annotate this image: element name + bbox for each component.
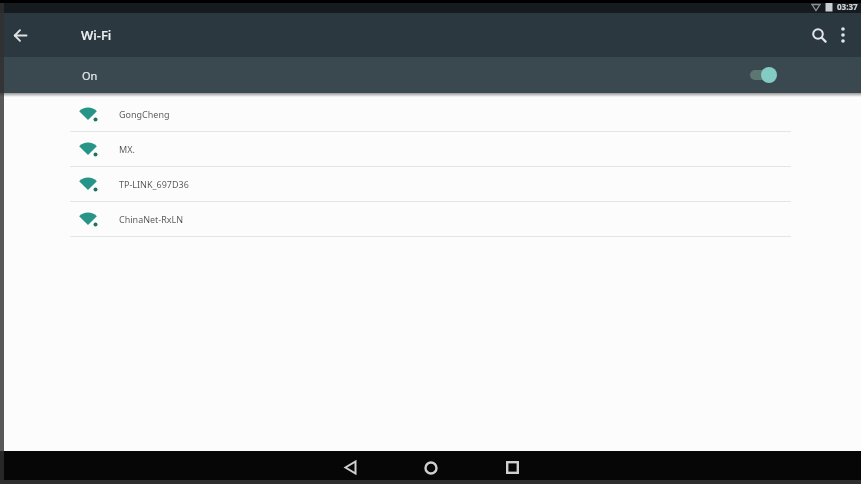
staticText: GongCheng — [119, 108, 170, 120]
button[interactable] — [8, 23, 32, 47]
button[interactable] — [833, 25, 853, 45]
staticText: Wi-Fi — [81, 26, 112, 44]
button[interactable]: MX. — [0, 132, 861, 166]
staticText: MX. — [119, 143, 135, 155]
button[interactable] — [411, 451, 451, 484]
staticText: On — [82, 68, 98, 83]
staticText: TP-LINK_697D36 — [119, 178, 189, 190]
button[interactable]: On — [0, 57, 861, 93]
staticText: ChinaNet-RxLN — [119, 213, 184, 225]
button[interactable]: ChinaNet-RxLN — [0, 202, 861, 236]
staticText: 03:37 — [837, 1, 858, 12]
button[interactable] — [330, 451, 370, 484]
button[interactable]: TP-LINK_697D36 — [0, 167, 861, 201]
button[interactable]: GongCheng — [0, 97, 861, 131]
button[interactable] — [492, 451, 532, 484]
button[interactable] — [806, 22, 832, 48]
